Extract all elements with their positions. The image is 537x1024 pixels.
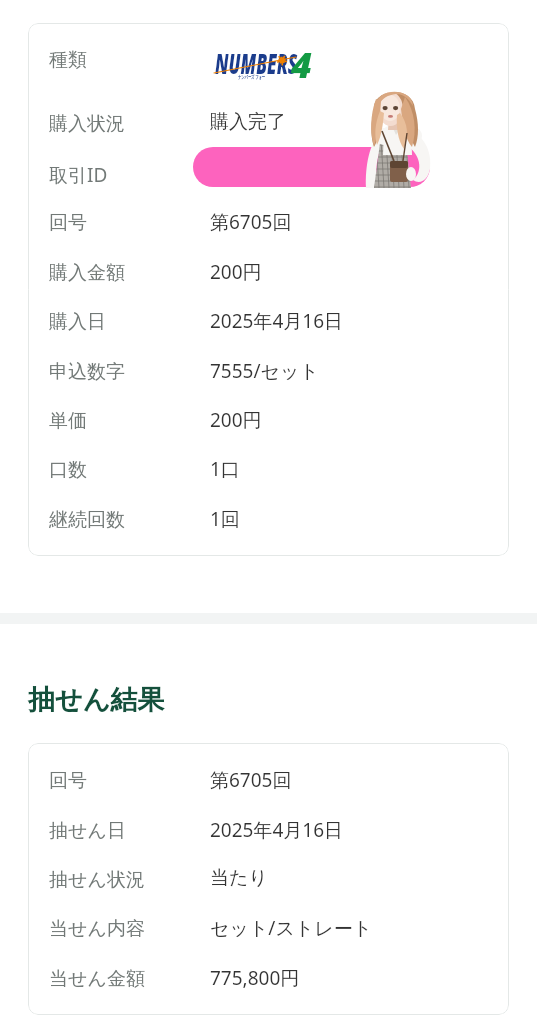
staticText: 第6705回	[210, 767, 292, 793]
staticText: 4	[291, 41, 312, 89]
staticText: 200円	[210, 259, 262, 285]
staticText: 当せん内容	[49, 917, 145, 941]
staticText: 抽せん結果	[28, 683, 165, 717]
staticText: 購入状況	[49, 112, 125, 136]
staticText: 申込数字	[49, 360, 125, 384]
staticText: 購入金額	[49, 261, 125, 285]
staticText: 7555/セット	[210, 358, 319, 384]
staticText: 2025年4月16日	[210, 308, 344, 334]
staticText: ナンバーズ フォー	[238, 74, 265, 82]
staticText: 口数	[49, 458, 87, 482]
staticText: 継続回数	[49, 508, 125, 532]
staticText: 単価	[49, 409, 87, 433]
staticText: 回号	[49, 769, 87, 793]
staticText: 抽せん日	[49, 819, 126, 843]
staticText: 1回	[210, 506, 240, 532]
staticText: 第6705回	[210, 209, 292, 235]
staticText: 200円	[210, 407, 262, 433]
staticText: 種類	[49, 48, 87, 72]
button[interactable]	[28, 23, 509, 556]
staticText: 購入完了	[210, 110, 286, 134]
button[interactable]	[28, 743, 509, 1015]
staticText: 当たり	[210, 866, 268, 890]
button[interactable]: ナンバーズ4	[214, 48, 315, 82]
staticText: 回号	[49, 211, 87, 235]
staticText: 775,800円	[210, 965, 300, 991]
staticText: 取引ID	[49, 162, 108, 188]
staticText: セット/ストレート	[210, 915, 373, 941]
staticText: NUMBERS	[215, 44, 297, 82]
staticText: 抽せん状況	[49, 868, 145, 892]
staticText: 1口	[210, 456, 240, 482]
staticText: 購入日	[49, 310, 106, 334]
staticText: 2025年4月16日	[210, 817, 344, 843]
staticText: 当せん金額	[49, 967, 145, 991]
